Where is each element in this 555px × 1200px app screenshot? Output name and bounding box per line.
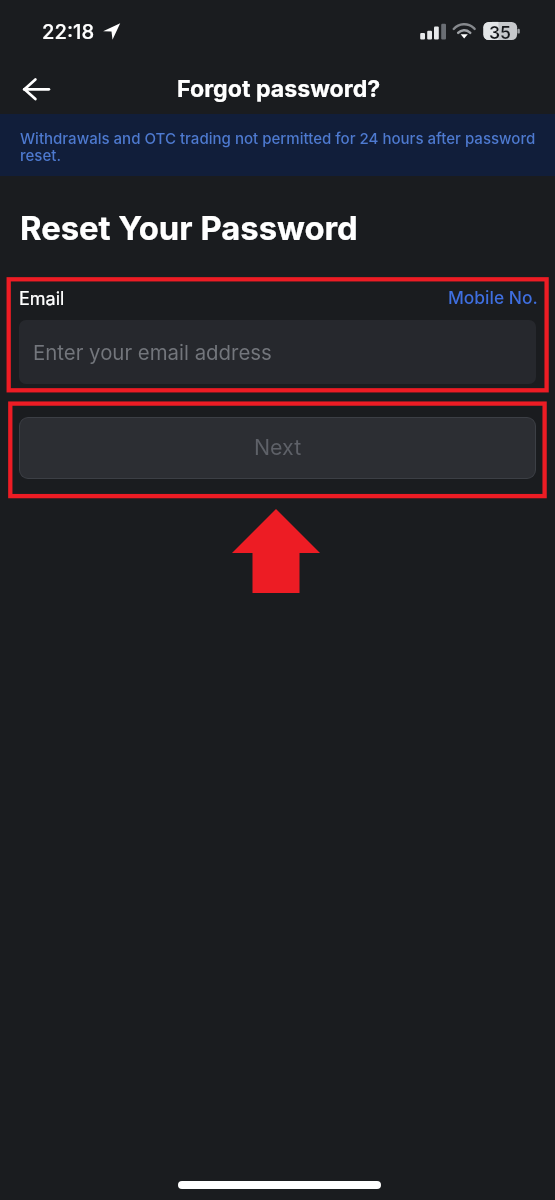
button[interactable]: Next	[19, 417, 536, 479]
staticText: Mobile No.	[448, 287, 538, 308]
staticText: Next	[254, 434, 302, 460]
button[interactable]: Enter your email address	[19, 320, 536, 384]
button[interactable]: Mobile No.	[439, 281, 544, 311]
staticText: Forgot password?	[177, 75, 381, 103]
button[interactable]: Back	[14, 68, 58, 112]
staticText: 22:18	[42, 19, 95, 43]
staticText: Reset Your Password	[20, 208, 358, 248]
staticText: Email	[19, 288, 65, 310]
staticText: Withdrawals and OTC trading not permitte…	[20, 129, 538, 165]
staticText: 35	[489, 22, 511, 43]
staticText: Enter your email address	[33, 340, 272, 365]
